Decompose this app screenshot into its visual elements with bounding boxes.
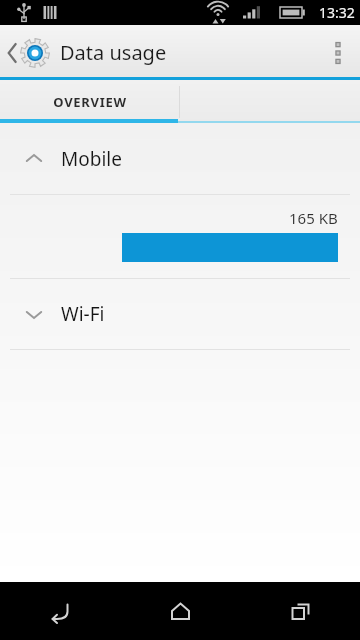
button[interactable]: Mobile xyxy=(0,141,360,177)
button[interactable]: Recent apps xyxy=(240,582,360,640)
staticText: 13:32 xyxy=(319,3,355,22)
button[interactable]: 165 KB xyxy=(0,195,360,278)
staticText: Wi-Fi xyxy=(61,301,105,327)
button[interactable]: Navigate up xyxy=(0,25,223,80)
button[interactable]: Back xyxy=(0,582,120,640)
staticText: OVERVIEW xyxy=(53,93,127,111)
staticText: 165 KB xyxy=(289,208,338,228)
button[interactable]: Wi-Fi xyxy=(0,296,360,332)
staticText: Data usage xyxy=(60,39,167,66)
button[interactable]: OVERVIEW xyxy=(0,80,179,123)
button[interactable]: Home xyxy=(120,582,240,640)
button[interactable]: More options xyxy=(316,25,360,80)
staticText: Mobile xyxy=(61,146,122,172)
button[interactable]: Apps tab xyxy=(179,80,360,123)
